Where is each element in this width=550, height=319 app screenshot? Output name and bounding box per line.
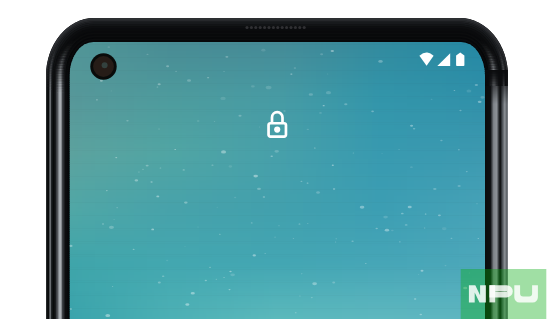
button[interactable]: Phone lock screen <box>0 0 550 319</box>
